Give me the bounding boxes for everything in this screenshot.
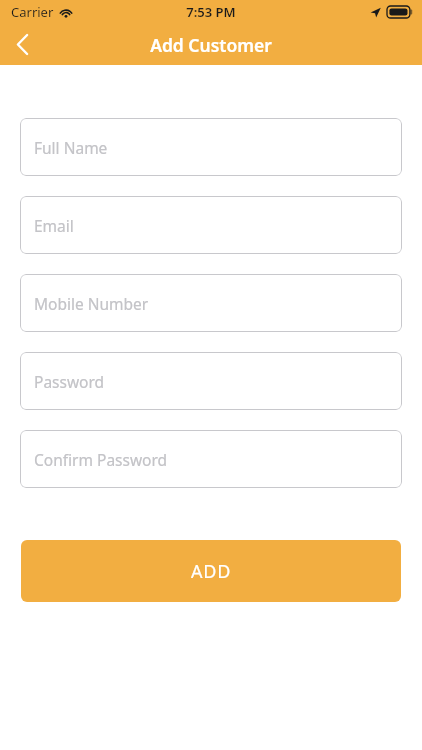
staticText: Password bbox=[34, 371, 105, 392]
staticText: 7:53 PM bbox=[186, 3, 236, 21]
staticText: ADD bbox=[191, 559, 232, 584]
staticText: Full Name bbox=[34, 137, 108, 158]
button[interactable]: Email bbox=[20, 196, 402, 254]
staticText: Carrier bbox=[11, 3, 54, 21]
button[interactable]: Confirm Password bbox=[20, 430, 402, 488]
staticText: Add Customer bbox=[150, 33, 272, 57]
button[interactable]: Password bbox=[20, 352, 402, 410]
staticText: Confirm Password bbox=[34, 449, 168, 470]
button[interactable]: Mobile Number bbox=[20, 274, 402, 332]
staticText: Email bbox=[34, 215, 74, 236]
button[interactable]: ADD bbox=[21, 540, 401, 602]
staticText: Mobile Number bbox=[34, 293, 149, 314]
button[interactable]: Full Name bbox=[20, 118, 402, 176]
button[interactable]: Back bbox=[0, 24, 44, 65]
